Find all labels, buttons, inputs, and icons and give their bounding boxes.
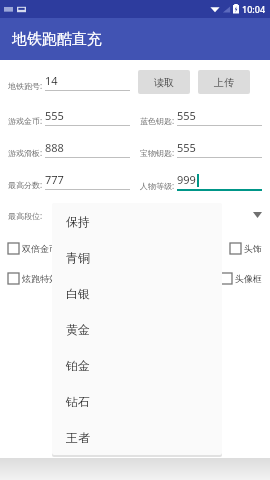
staticText: 人物等级: <box>140 180 175 191</box>
button[interactable]: 双倍金币 <box>8 243 58 254</box>
staticText: 钻石 <box>66 394 90 409</box>
staticText: 游戏滑板: <box>8 147 43 158</box>
staticText: 保持 <box>66 214 90 229</box>
staticText: 地铁跑酷直充 <box>12 30 102 49</box>
button[interactable]: 保持 <box>52 203 222 239</box>
button[interactable]: 青铜 <box>52 239 222 275</box>
staticText: 最高段位: <box>8 210 43 221</box>
staticText: 777 <box>45 172 64 187</box>
staticText: 游戏金币: <box>8 115 43 126</box>
staticText: 头饰 <box>244 243 262 254</box>
staticText: 10:04 <box>242 3 266 15</box>
staticText: 炫跑特效 <box>22 273 58 284</box>
staticText: 双倍金币 <box>22 243 58 254</box>
staticText: 王者 <box>66 430 90 445</box>
staticText: 888 <box>45 140 64 155</box>
staticText: 上传 <box>214 76 234 89</box>
staticText: 555 <box>45 108 64 123</box>
staticText: 黄金 <box>66 322 90 337</box>
button[interactable]: 头像框 <box>221 273 262 284</box>
staticText: 最高分数: <box>8 179 43 190</box>
button[interactable]: 铂金 <box>52 347 222 383</box>
staticText: 青铜 <box>66 250 90 265</box>
staticText: 铂金 <box>66 358 90 373</box>
button[interactable]: 读取 <box>138 70 190 94</box>
staticText: 14 <box>45 73 58 88</box>
staticText: 555 <box>177 140 196 155</box>
button[interactable]: 钻石 <box>52 383 222 419</box>
staticText: 读取 <box>154 76 174 89</box>
staticText: 999 <box>177 172 196 187</box>
button[interactable]: 上传 <box>198 70 250 94</box>
button[interactable]: 炫跑特效 <box>8 273 58 284</box>
button[interactable]: 头饰 <box>230 243 262 254</box>
staticText: 蓝色钥匙: <box>140 115 175 126</box>
other: Open rank dropdown <box>253 212 262 218</box>
staticText: 宝物钥匙: <box>140 147 175 158</box>
button[interactable]: 王者 <box>52 419 222 455</box>
button[interactable]: 最高段位: <box>8 205 262 225</box>
staticText: 地铁跑号: <box>8 80 43 91</box>
button[interactable]: 黄金 <box>52 311 222 347</box>
button[interactable]: 白银 <box>52 275 222 311</box>
staticText: 555 <box>177 108 196 123</box>
staticText: 白银 <box>66 286 90 301</box>
staticText: 头像框 <box>235 273 262 284</box>
